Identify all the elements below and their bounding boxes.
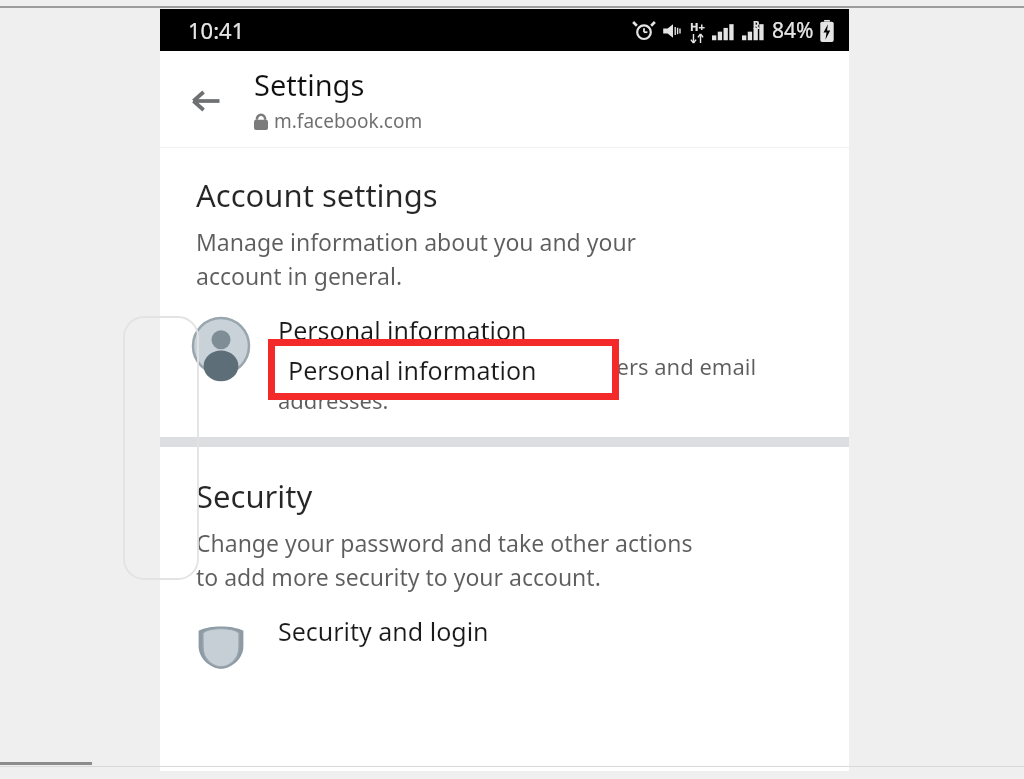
staticText: Account settings bbox=[196, 174, 438, 216]
button[interactable]: Security and login bbox=[160, 612, 849, 682]
staticText: Manage information about you and your ac… bbox=[196, 226, 637, 291]
staticText: Update your name, phone numbers and emai… bbox=[278, 351, 757, 415]
staticText: 10:41 bbox=[188, 15, 245, 45]
staticText: Change your password and take other acti… bbox=[196, 527, 693, 592]
staticText: R bbox=[753, 18, 760, 32]
staticText: Security bbox=[196, 475, 313, 517]
staticText: 84% bbox=[772, 16, 814, 45]
staticText: H+ bbox=[690, 19, 705, 34]
staticText: Security and login bbox=[278, 614, 489, 648]
staticText: Settings bbox=[254, 65, 365, 104]
button[interactable]: Personal information bbox=[160, 311, 849, 421]
staticText: Personal information bbox=[278, 313, 527, 347]
staticText: m.facebook.com bbox=[274, 108, 423, 134]
staticText: Personal information bbox=[288, 353, 537, 387]
button[interactable]: Back bbox=[182, 77, 230, 125]
